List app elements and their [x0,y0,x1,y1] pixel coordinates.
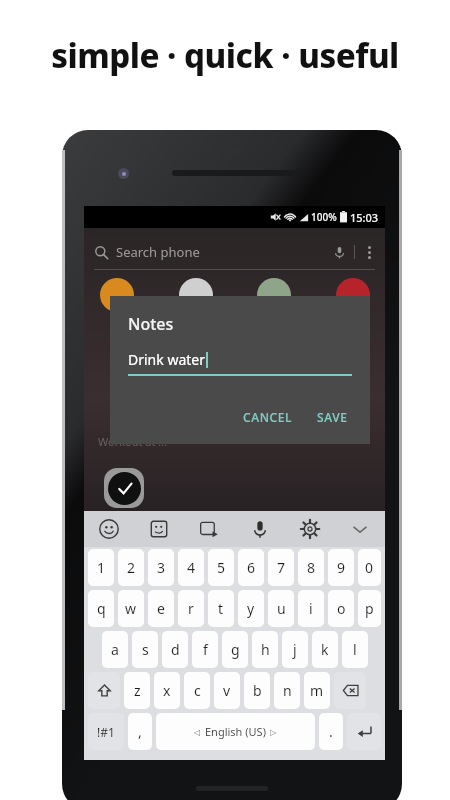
button[interactable]: SAVE [309,404,356,430]
button[interactable]: z [124,672,150,709]
button[interactable]: Drink water [128,350,208,369]
staticText: v [223,681,231,700]
button[interactable]: App [179,278,213,312]
button[interactable]: 8 [298,549,324,586]
staticText: e [157,599,165,618]
button[interactable]: GIF [198,518,220,540]
button[interactable]: k [312,631,338,668]
button[interactable]: b [244,672,270,709]
button[interactable]: m [304,672,330,709]
button[interactable]: 4 [178,549,204,586]
staticText: z [134,681,141,700]
button[interactable]: q [88,590,114,627]
staticText: o [337,599,346,618]
staticText: a [111,640,119,659]
button[interactable]: 7 [268,549,294,586]
staticText: 9 [337,558,346,577]
staticText: n [283,681,292,700]
staticText: j [293,640,297,659]
button[interactable]: j [282,631,308,668]
staticText: 8 [307,558,316,577]
button[interactable]: i [298,590,324,627]
staticText: h [261,640,270,659]
staticText: m [310,681,324,700]
button[interactable]: App [336,278,370,312]
staticText: !#1 [97,724,115,740]
button[interactable]: d [162,631,188,668]
staticText: x [163,681,171,700]
staticText: d [171,640,180,659]
staticText: Notes [128,313,174,335]
staticText: 4 [187,558,196,577]
button[interactable]: e [148,590,174,627]
button[interactable]: f [192,631,218,668]
staticText: simple · quick · useful [51,33,399,78]
button[interactable]: y [238,590,264,627]
staticText: l [353,640,357,659]
button[interactable]: Checklist app [104,468,144,508]
staticText: Search phone [116,243,200,261]
staticText: 5 [217,558,226,577]
staticText: q [97,599,106,618]
button[interactable]: l [342,631,368,668]
button[interactable]: Key [347,713,381,750]
button[interactable]: h [252,631,278,668]
button[interactable]: 5 [208,549,234,586]
staticText: 7 [277,558,286,577]
staticText: 2 [127,558,136,577]
button[interactable]: g [222,631,248,668]
staticText: 0 [365,558,374,577]
button[interactable]: Stickers [148,518,170,540]
button[interactable]: CANCEL [235,404,301,430]
button[interactable]: 2 [118,549,144,586]
button[interactable]: s [132,631,158,668]
staticText: ▷ [266,726,277,737]
staticText: y [247,599,255,618]
button[interactable]: !#1 [88,713,124,750]
staticText: Drink water [128,350,205,369]
button[interactable]: . [319,713,343,750]
staticText: SAVE [317,409,348,425]
staticText: b [253,681,262,700]
button[interactable]: Search phone [94,236,375,268]
staticText: p [365,599,374,618]
button[interactable]: App [257,278,291,312]
button[interactable]: u [268,590,294,627]
button[interactable]: x [154,672,180,709]
button[interactable]: Hide keyboard [349,518,371,540]
button[interactable]: ◁ [156,713,315,750]
button[interactable]: n [274,672,300,709]
button[interactable]: p [358,590,381,627]
button[interactable]: Keyboard settings [299,518,321,540]
button[interactable]: c [184,672,210,709]
button[interactable]: App [100,278,134,312]
staticText: u [277,599,286,618]
staticText: Workout at ... [98,434,168,449]
button[interactable]: Key [88,672,120,709]
staticText: 1 [97,558,106,577]
staticText: 3 [157,558,166,577]
button[interactable]: , [128,713,152,750]
button[interactable]: v [214,672,240,709]
staticText: 15:03 [350,210,379,225]
button[interactable]: 3 [148,549,174,586]
button[interactable]: Emoji [98,518,120,540]
staticText: , [138,722,142,741]
button[interactable]: a [102,631,128,668]
button[interactable]: w [118,590,144,627]
staticText: i [309,599,313,618]
button[interactable]: 9 [328,549,354,586]
button[interactable]: Key [334,672,366,709]
staticText: 100% [311,210,337,224]
staticText: ◁ [194,726,205,737]
staticText: English (US) [205,724,266,739]
button[interactable]: t [208,590,234,627]
staticText: f [203,640,208,659]
button[interactable]: r [178,590,204,627]
button[interactable]: Voice input [249,518,271,540]
button[interactable]: 6 [238,549,264,586]
button[interactable]: 1 [88,549,114,586]
button[interactable]: 0 [358,549,381,586]
button[interactable]: o [328,590,354,627]
staticText: g [231,640,240,659]
